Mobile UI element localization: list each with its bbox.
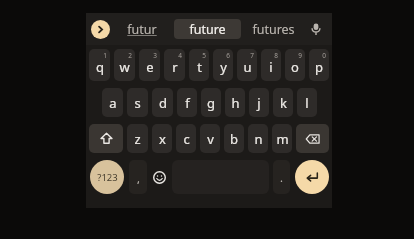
staticText: 8 bbox=[274, 51, 278, 60]
staticText: h bbox=[231, 94, 240, 112]
button[interactable]: m bbox=[272, 124, 292, 153]
staticText: 4 bbox=[178, 51, 182, 60]
button[interactable]: futures bbox=[241, 13, 305, 45]
staticText: t bbox=[197, 58, 202, 76]
staticText: b bbox=[230, 130, 238, 148]
staticText: 3 bbox=[153, 51, 157, 60]
button[interactable]: b bbox=[224, 124, 244, 153]
button[interactable]: 2 bbox=[114, 49, 135, 81]
button[interactable]: 6 bbox=[213, 49, 233, 81]
staticText: 1 bbox=[103, 51, 107, 60]
button[interactable]: Enter bbox=[295, 160, 329, 194]
button[interactable]: 1 bbox=[89, 49, 110, 81]
button[interactable]: n bbox=[248, 124, 268, 153]
button[interactable]: d bbox=[152, 88, 173, 117]
staticText: f bbox=[185, 94, 190, 112]
button[interactable]: 0 bbox=[309, 49, 329, 81]
button[interactable]: f bbox=[177, 88, 197, 117]
staticText: l bbox=[305, 94, 309, 112]
staticText: d bbox=[159, 94, 167, 112]
button[interactable]: Expand suggestions bbox=[91, 20, 110, 39]
staticText: a bbox=[109, 94, 117, 112]
button[interactable]: . bbox=[273, 160, 290, 194]
staticText: n bbox=[254, 130, 263, 148]
button[interactable]: c bbox=[176, 124, 196, 153]
staticText: , bbox=[137, 171, 140, 186]
staticText: 7 bbox=[250, 51, 254, 60]
staticText: p bbox=[315, 58, 323, 76]
button[interactable]: 5 bbox=[189, 49, 209, 81]
button[interactable]: 9 bbox=[285, 49, 305, 81]
staticText: futur bbox=[127, 21, 157, 38]
button[interactable]: v bbox=[200, 124, 220, 153]
staticText: z bbox=[134, 130, 141, 148]
staticText: . bbox=[280, 170, 283, 185]
staticText: 9 bbox=[298, 51, 302, 60]
staticText: k bbox=[280, 94, 287, 112]
staticText: w bbox=[119, 58, 130, 76]
button[interactable]: Backspace bbox=[296, 124, 329, 153]
staticText: s bbox=[134, 94, 141, 112]
button[interactable]: g bbox=[201, 88, 221, 117]
staticText: i bbox=[269, 58, 273, 76]
staticText: e bbox=[146, 58, 154, 76]
staticText: o bbox=[291, 58, 299, 76]
staticText: q bbox=[96, 58, 104, 76]
staticText: 2 bbox=[128, 51, 132, 60]
button[interactable]: s bbox=[127, 88, 148, 117]
button[interactable]: Emoji bbox=[149, 158, 170, 196]
button[interactable]: 4 bbox=[164, 49, 185, 81]
button[interactable]: , bbox=[129, 160, 147, 194]
staticText: c bbox=[183, 130, 190, 148]
button[interactable]: future bbox=[174, 19, 241, 39]
button[interactable]: ?123 bbox=[90, 160, 124, 194]
button[interactable]: 8 bbox=[261, 49, 281, 81]
staticText: futures bbox=[252, 21, 295, 38]
button[interactable]: 7 bbox=[237, 49, 257, 81]
staticText: y bbox=[220, 58, 227, 76]
staticText: 5 bbox=[202, 51, 206, 60]
staticText: v bbox=[207, 130, 214, 148]
staticText: g bbox=[207, 94, 215, 112]
button[interactable]: futur bbox=[110, 13, 174, 45]
staticText: ?123 bbox=[97, 171, 118, 184]
staticText: j bbox=[257, 94, 261, 112]
button[interactable]: Shift bbox=[89, 124, 123, 153]
button[interactable]: z bbox=[127, 124, 148, 153]
button[interactable]: 3 bbox=[139, 49, 160, 81]
staticText: 0 bbox=[322, 51, 326, 60]
staticText: future bbox=[189, 21, 226, 38]
staticText: x bbox=[159, 130, 166, 148]
button[interactable]: l bbox=[297, 88, 317, 117]
button[interactable]: x bbox=[152, 124, 172, 153]
staticText: r bbox=[172, 58, 178, 76]
button[interactable]: j bbox=[249, 88, 269, 117]
button[interactable]: h bbox=[225, 88, 245, 117]
staticText: u bbox=[243, 58, 252, 76]
button[interactable]: k bbox=[273, 88, 293, 117]
button[interactable]: Voice input bbox=[305, 18, 327, 40]
staticText: 6 bbox=[226, 51, 230, 60]
staticText: m bbox=[276, 130, 289, 148]
button[interactable]: a bbox=[102, 88, 123, 117]
